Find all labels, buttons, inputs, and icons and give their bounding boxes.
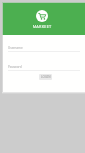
button[interactable]: Password [8,65,80,71]
button[interactable]: Username [8,46,80,52]
button[interactable]: Markeet logo [36,10,48,22]
staticText: LOGIN [41,75,51,79]
button[interactable]: LOGIN [39,74,52,80]
staticText: MARKEET [32,24,52,29]
staticText: Username [8,46,23,50]
staticText: Password [8,65,22,69]
